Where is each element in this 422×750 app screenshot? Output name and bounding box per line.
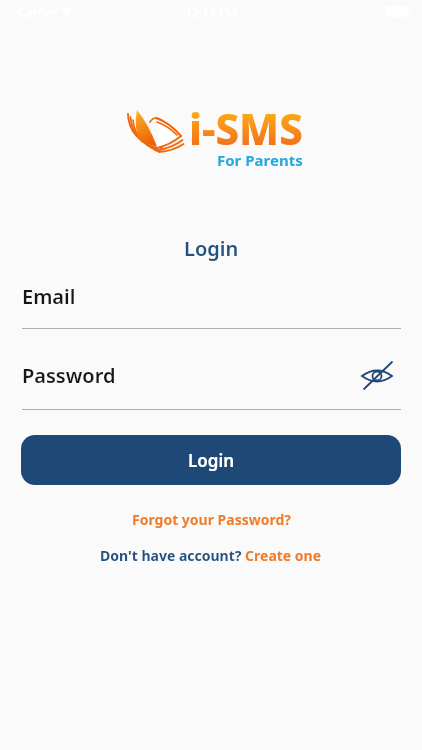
staticText: Email bbox=[22, 283, 76, 310]
button[interactable]: Forgot your Password? bbox=[132, 510, 291, 529]
button[interactable] bbox=[358, 357, 394, 393]
button[interactable]: Login bbox=[21, 435, 401, 485]
staticText: For Parents bbox=[217, 150, 303, 170]
staticText: Login bbox=[184, 235, 239, 262]
staticText: Password bbox=[22, 362, 116, 389]
staticText: Login bbox=[188, 449, 235, 472]
staticText: i-SMS bbox=[189, 100, 303, 157]
button[interactable]: Don't have account? Create one bbox=[100, 546, 322, 565]
